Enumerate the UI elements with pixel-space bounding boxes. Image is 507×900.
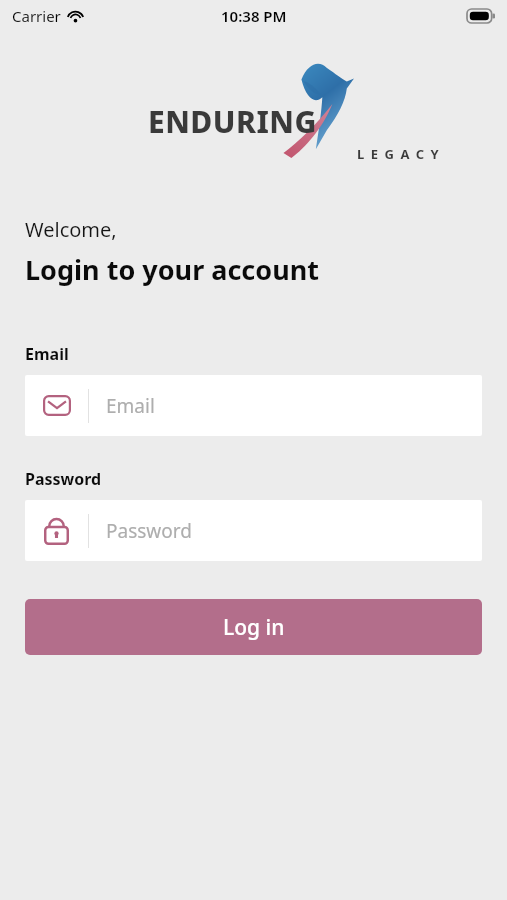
staticText: Password [25,468,102,490]
staticText: Login to your account [25,251,319,288]
button[interactable]: Password [25,500,482,561]
button[interactable]: Log in [25,599,482,655]
other: Password [44,516,69,545]
staticText: Password [106,518,192,544]
staticText: Email [25,343,69,365]
staticText: Welcome, [25,216,117,243]
staticText: 10:38 PM [221,6,287,26]
staticText: Log in [223,613,285,642]
staticText: LEGACY [357,145,446,163]
button[interactable]: Email [25,375,482,436]
staticText: ENDURING [148,101,317,142]
staticText: Email [106,393,155,419]
other: Email [43,395,71,416]
staticText: Carrier [12,6,61,26]
